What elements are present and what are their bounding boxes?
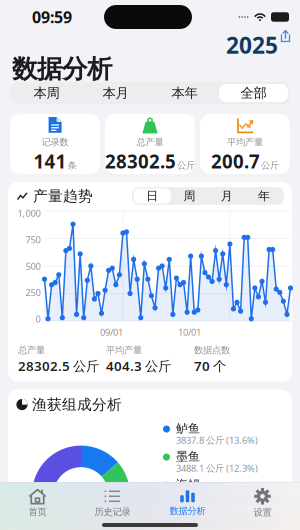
- staticText: 记录数: [41, 136, 68, 148]
- staticText: 28302.5: [105, 149, 176, 174]
- staticText: 总产量: [136, 136, 163, 148]
- staticText: 141: [33, 149, 66, 174]
- button[interactable]: 全部: [219, 84, 288, 102]
- staticText: 数据分析: [12, 53, 112, 84]
- staticText: 产量趋势: [33, 187, 93, 205]
- staticText: 公斤: [177, 160, 195, 171]
- staticText: 周: [183, 189, 195, 203]
- staticText: 3837.8 公斤 (13.6%): [176, 434, 258, 446]
- staticText: 平均产量: [106, 344, 142, 356]
- staticText: 2025: [226, 30, 278, 60]
- staticText: 28302.5 公斤: [18, 357, 99, 375]
- button[interactable]: 本周: [12, 84, 81, 102]
- staticText: 月: [221, 189, 233, 203]
- staticText: 条: [67, 160, 76, 171]
- button[interactable]: 月: [208, 188, 245, 203]
- staticText: 首页: [28, 506, 46, 518]
- staticText: 404.3 公斤: [106, 357, 171, 375]
- staticText: 数据分析: [169, 505, 205, 517]
- staticText: 200.7: [211, 149, 260, 174]
- staticText: 鲈鱼: [176, 421, 200, 436]
- button[interactable]: 设置: [225, 484, 300, 522]
- staticText: 0: [35, 313, 40, 325]
- staticText: 海鳗: [176, 477, 200, 492]
- button[interactable]: 本年: [150, 84, 219, 102]
- staticText: 3300.0 公斤 (11.8%): [176, 490, 258, 502]
- staticText: 历史记录: [94, 506, 130, 518]
- button[interactable]: 首页: [0, 484, 75, 522]
- staticText: 日: [146, 189, 158, 203]
- staticText: 公斤: [261, 160, 279, 171]
- staticText: 250: [25, 286, 40, 299]
- button[interactable]: 本月: [81, 84, 150, 102]
- staticText: 数据点数: [194, 344, 230, 356]
- staticText: 设置: [253, 507, 271, 518]
- staticText: 09/01: [100, 326, 123, 338]
- staticText: 70 个: [194, 357, 226, 375]
- staticText: 全部: [240, 85, 266, 101]
- staticText: 渔获组成分析: [32, 396, 122, 414]
- staticText: 总产量: [18, 344, 45, 356]
- staticText: 1,000: [17, 207, 40, 219]
- staticText: 10/01: [178, 326, 201, 338]
- staticText: 平均产量: [227, 136, 263, 148]
- button[interactable]: 年: [245, 188, 282, 203]
- staticText: 本年: [171, 85, 197, 101]
- staticText: 3488.1 公斤 (12.3%): [176, 462, 258, 474]
- staticText: 500: [25, 260, 40, 272]
- staticText: 墨鱼: [176, 449, 200, 464]
- button[interactable]: 数据分析: [150, 484, 225, 522]
- button[interactable]: 历史记录: [75, 484, 150, 522]
- button[interactable]: 日: [133, 188, 171, 203]
- button[interactable]: 周: [171, 188, 208, 203]
- staticText: 本周: [33, 85, 59, 101]
- staticText: 09:59: [32, 6, 72, 28]
- button[interactable]: Export 2025: [226, 30, 300, 60]
- staticText: 本月: [102, 85, 128, 101]
- staticText: 年: [258, 189, 270, 203]
- staticText: 750: [25, 233, 40, 246]
